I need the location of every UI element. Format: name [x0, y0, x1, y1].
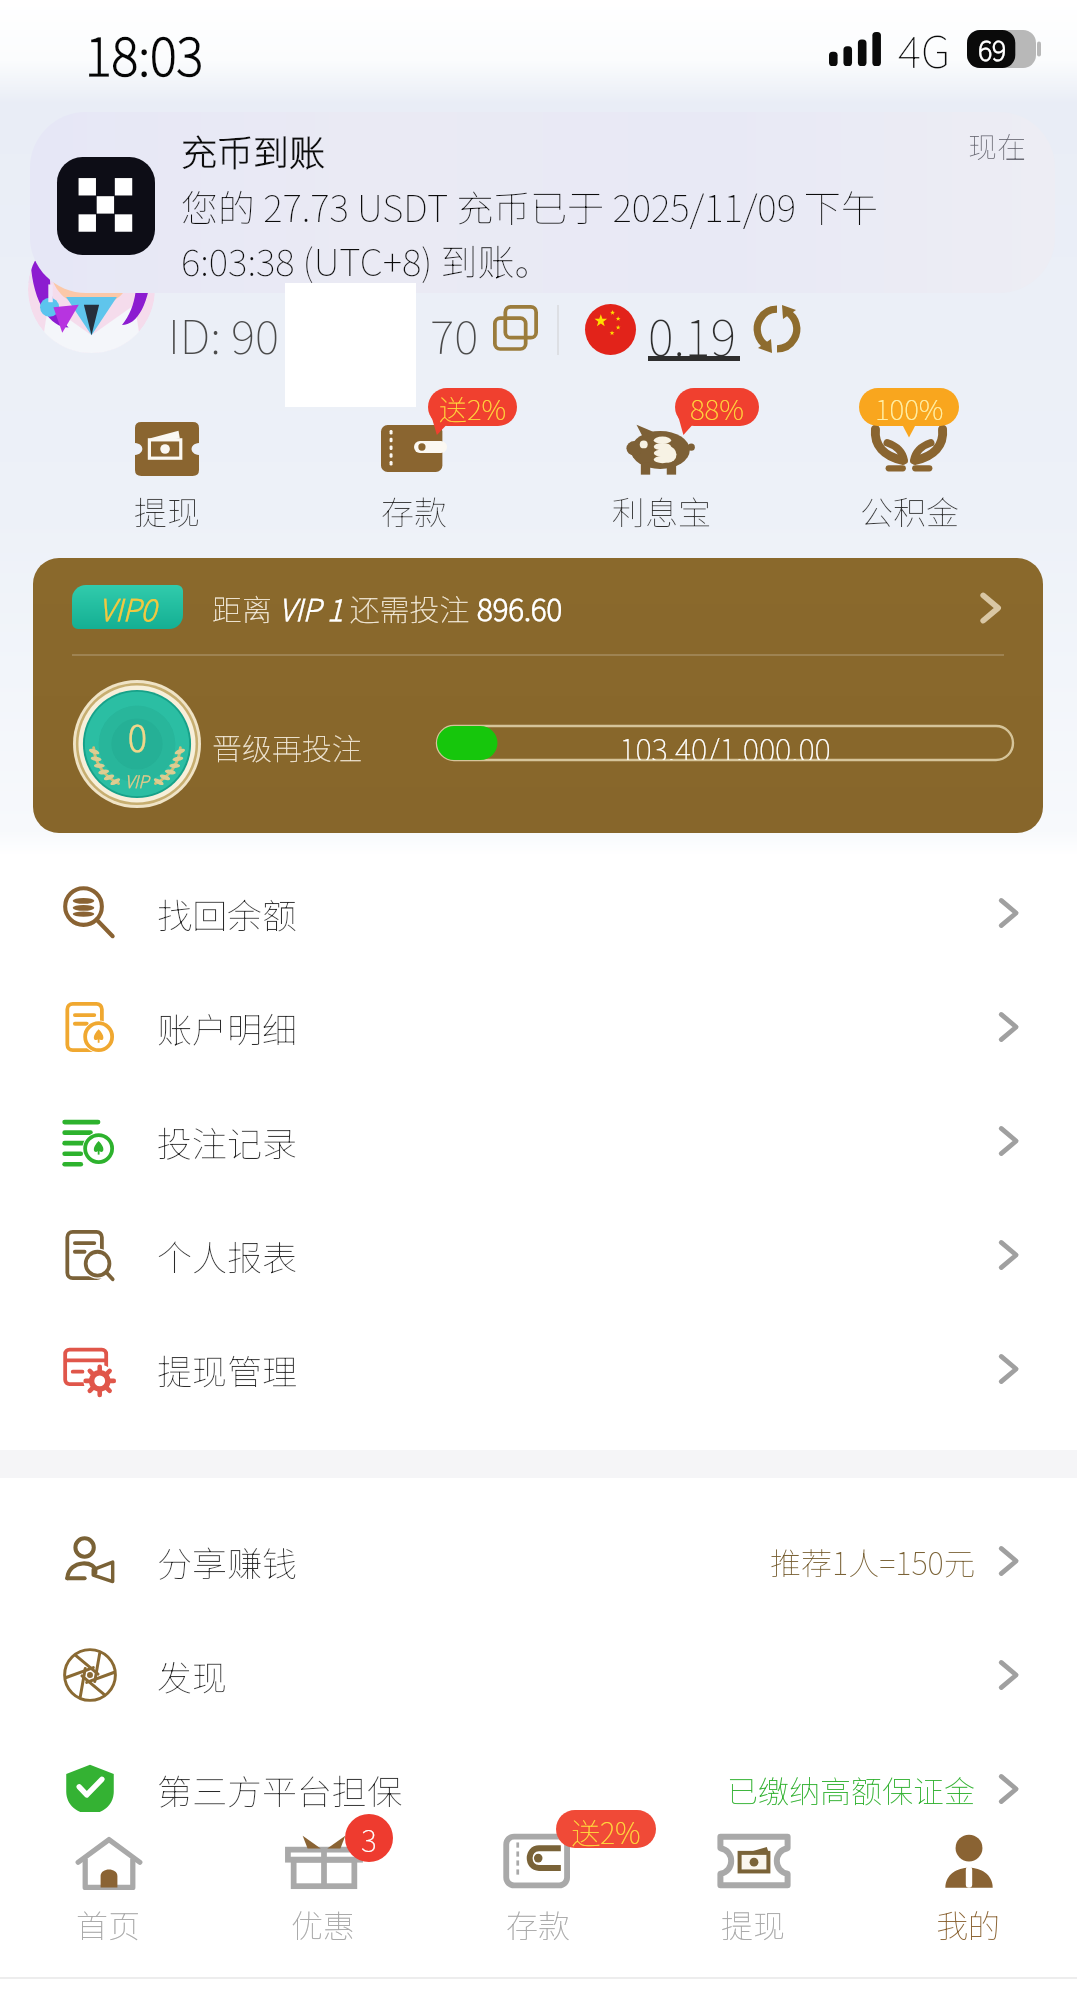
- staticText: VIP 1: [279, 586, 343, 629]
- button[interactable]: 充币到账: [30, 112, 1055, 293]
- staticText: 分享赚钱: [157, 1536, 298, 1587]
- staticText: 发现: [157, 1650, 228, 1701]
- staticText: 提现管理: [157, 1344, 298, 1395]
- staticText: 0.19: [648, 299, 736, 370]
- staticText: 提现: [134, 487, 200, 535]
- staticText: 首页: [76, 1901, 141, 1947]
- staticText: 0: [128, 710, 147, 762]
- button[interactable]: Refresh balance: [752, 304, 802, 354]
- button[interactable]: 提现: [82, 400, 252, 536]
- staticText: 您的 27.73 USDT 充币已于 2025/11/09 下午: [181, 179, 879, 233]
- staticText: 公积金: [860, 487, 959, 535]
- staticText: 送2%: [571, 1810, 641, 1848]
- staticText: 还需投注: [343, 586, 477, 629]
- staticText: 账户明细: [157, 1002, 298, 1053]
- button[interactable]: 利息宝: [576, 400, 746, 536]
- staticText: 100%: [875, 388, 944, 426]
- staticText: 69: [978, 30, 1007, 68]
- staticText: VIP0: [99, 586, 157, 629]
- staticText: 找回余额: [157, 888, 298, 939]
- button[interactable]: 我的: [861, 1812, 1076, 1960]
- staticText: 第三方平台担保: [157, 1764, 403, 1815]
- staticText: 现在: [968, 124, 1027, 166]
- staticText: 充币到账: [181, 124, 326, 176]
- button[interactable]: 个人报表: [0, 1198, 1077, 1312]
- button[interactable]: 存款: [329, 400, 499, 536]
- staticText: 晋级再投注: [212, 725, 362, 768]
- staticText: 送2%: [439, 388, 507, 426]
- button[interactable]: 公积金: [824, 400, 994, 536]
- button[interactable]: 存款: [431, 1812, 646, 1960]
- staticText: 提现: [721, 1901, 786, 1947]
- staticText: 个人报表: [157, 1230, 298, 1281]
- button[interactable]: VIP0: [33, 558, 1043, 833]
- staticText: 优惠: [291, 1901, 356, 1947]
- button[interactable]: 投注记录: [0, 1084, 1077, 1198]
- staticText: 距离: [212, 586, 279, 629]
- staticText: 103.40/1,000.00: [437, 726, 1013, 760]
- button[interactable]: 首页: [1, 1812, 216, 1960]
- staticText: 896.60: [477, 586, 563, 629]
- button[interactable]: 优惠: [216, 1812, 431, 1960]
- button[interactable]: 提现管理: [0, 1312, 1077, 1426]
- staticText: 3: [361, 1817, 377, 1860]
- staticText: 我的: [936, 1901, 1001, 1947]
- button[interactable]: 发现: [0, 1618, 1077, 1732]
- button[interactable]: 找回余额: [0, 856, 1077, 970]
- staticText: 推荐1人=150元: [770, 1539, 975, 1584]
- staticText: 存款: [381, 487, 447, 535]
- button[interactable]: Copy ID: [493, 305, 537, 349]
- staticText: 投注记录: [157, 1116, 298, 1167]
- button[interactable]: 分享赚钱: [0, 1504, 1077, 1618]
- staticText: 88%: [690, 388, 744, 426]
- staticText: 18:03: [85, 17, 204, 91]
- staticText: 4G: [898, 17, 951, 81]
- button[interactable]: 第三方平台担保: [0, 1732, 1077, 1846]
- staticText: 存款: [506, 1901, 571, 1947]
- staticText: 6:03:38 (UTC+8) 到账。: [181, 233, 552, 287]
- staticText: 利息宝: [612, 487, 711, 535]
- staticText: VIP: [125, 768, 149, 793]
- staticText: 已缴纳高额保证金: [727, 1767, 975, 1812]
- staticText: ID: 90 70: [168, 301, 479, 368]
- button[interactable]: 账户明细: [0, 970, 1077, 1084]
- button[interactable]: 提现: [646, 1812, 861, 1960]
